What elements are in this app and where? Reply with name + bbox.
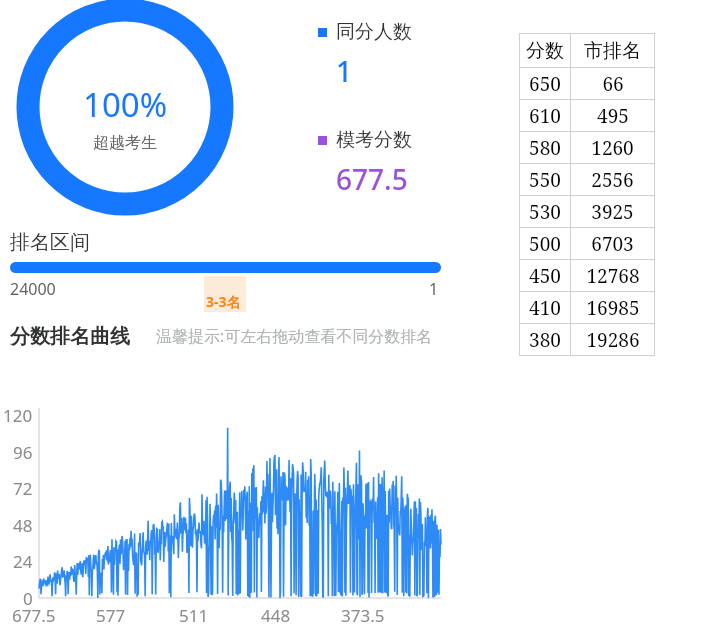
button[interactable] <box>10 262 441 273</box>
staticText: 超越考生 <box>93 133 157 153</box>
button[interactable]: 模考分数 <box>318 128 412 198</box>
staticText: 410 <box>529 295 561 321</box>
staticText: 530 <box>529 199 561 225</box>
staticText: 373.5 <box>341 604 385 627</box>
staticText: 96 <box>13 441 33 464</box>
staticText: 120 <box>3 404 33 427</box>
staticText: 排名区间 <box>10 230 90 255</box>
staticText: 66 <box>602 71 624 97</box>
staticText: 模考分数 <box>336 128 412 152</box>
staticText: 24 <box>13 550 33 573</box>
staticText: 3925 <box>591 199 634 225</box>
staticText: 610 <box>529 103 561 129</box>
staticText: 48 <box>13 514 33 537</box>
staticText: 16985 <box>586 295 640 321</box>
staticText: 3-3名 <box>206 292 241 311</box>
staticText: 511 <box>179 604 209 627</box>
staticText: 580 <box>529 135 561 161</box>
staticText: 1 <box>429 278 439 300</box>
staticText: 677.5 <box>336 160 408 198</box>
staticText: 12768 <box>586 263 640 289</box>
staticText: 450 <box>529 263 561 289</box>
staticText: 24000 <box>10 278 56 300</box>
staticText: 1260 <box>591 135 634 161</box>
staticText: 495 <box>597 103 629 129</box>
button[interactable]: 分数排名曲线图 <box>39 408 441 598</box>
staticText: 市排名 <box>584 39 641 63</box>
staticText: 19286 <box>586 327 640 353</box>
button[interactable]: 分数 <box>519 33 655 356</box>
staticText: 500 <box>529 231 561 257</box>
staticText: 380 <box>529 327 561 353</box>
staticText: 577 <box>96 604 126 627</box>
staticText: 0 <box>23 587 33 610</box>
staticText: 2556 <box>591 167 634 193</box>
staticText: 72 <box>13 477 33 500</box>
staticText: 1 <box>336 52 353 90</box>
staticText: 448 <box>261 604 291 627</box>
button[interactable]: 同分人数 <box>318 20 412 90</box>
staticText: 677.5 <box>12 604 56 627</box>
staticText: 同分人数 <box>336 20 412 44</box>
staticText: 100% <box>83 82 168 127</box>
staticText: 分数排名曲线 <box>10 324 130 349</box>
staticText: 分数 <box>526 39 564 63</box>
button[interactable]: 100% <box>16 0 234 214</box>
staticText: 550 <box>529 167 561 193</box>
staticText: 温馨提示:可左右拖动查看不同分数排名 <box>156 325 433 347</box>
staticText: 650 <box>529 71 561 97</box>
staticText: 6703 <box>591 231 634 257</box>
